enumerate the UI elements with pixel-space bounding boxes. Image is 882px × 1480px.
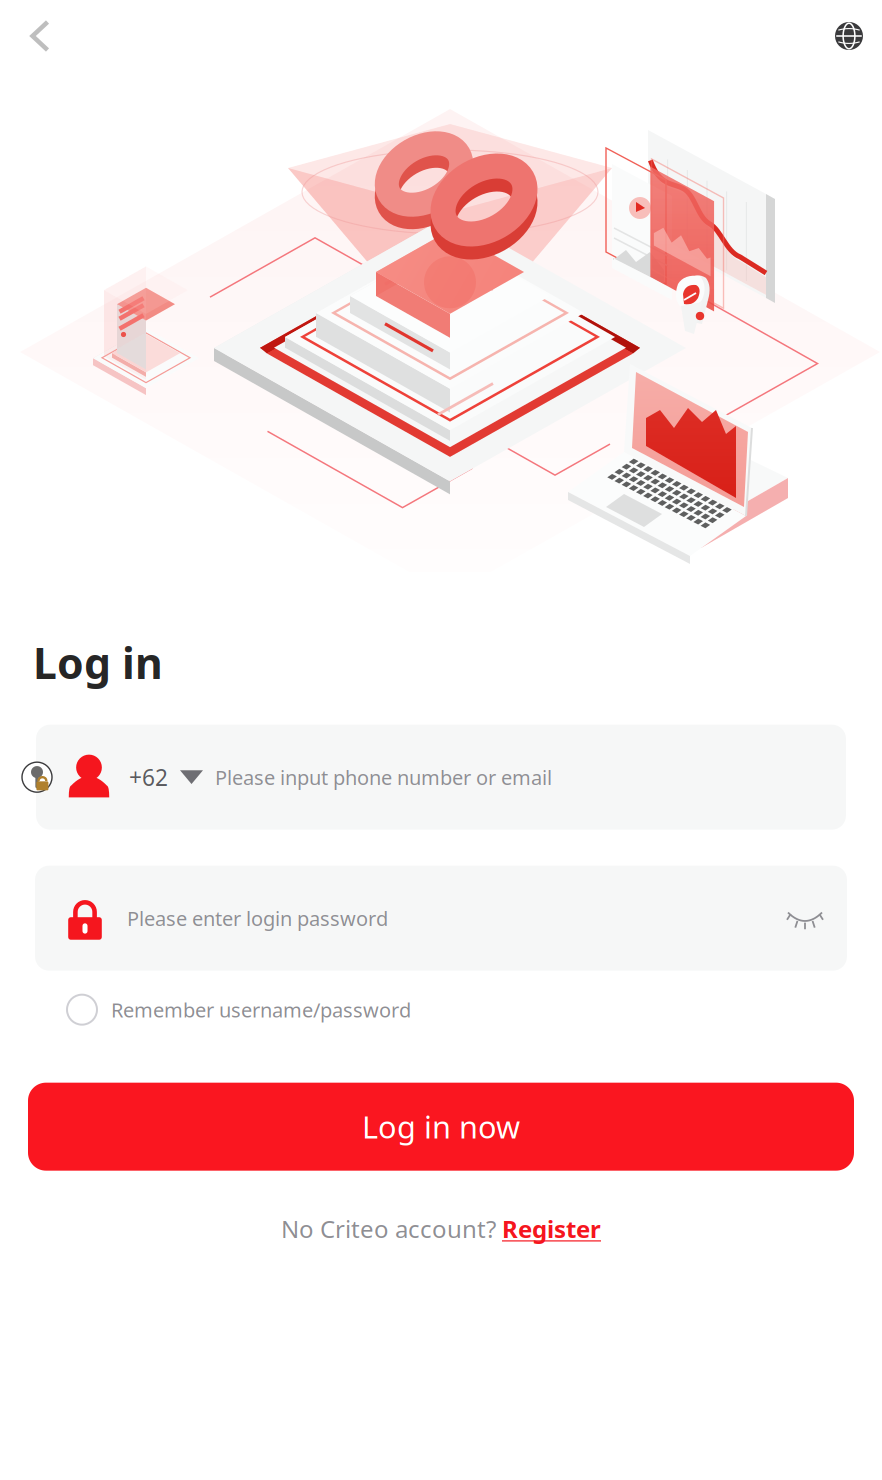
button[interactable]: Remember username/password bbox=[0, 987, 882, 1033]
staticText: No Criteo account? bbox=[281, 1213, 502, 1245]
button[interactable]: Back bbox=[9, 5, 71, 67]
button[interactable]: Please enter login password bbox=[35, 866, 847, 971]
button[interactable]: +62 bbox=[36, 725, 846, 830]
staticText: Please enter login password bbox=[127, 905, 388, 931]
staticText: Remember username/password bbox=[111, 996, 411, 1023]
staticText: Please input phone number or email bbox=[215, 764, 552, 790]
button[interactable]: Language bbox=[818, 5, 880, 67]
staticText: +62 bbox=[129, 762, 168, 792]
staticText: Register bbox=[502, 1213, 601, 1245]
staticText: Log in bbox=[33, 634, 163, 691]
button[interactable]: Log in now bbox=[28, 1083, 854, 1171]
staticText: Log in now bbox=[362, 1106, 520, 1147]
button[interactable]: Register bbox=[502, 1213, 601, 1245]
